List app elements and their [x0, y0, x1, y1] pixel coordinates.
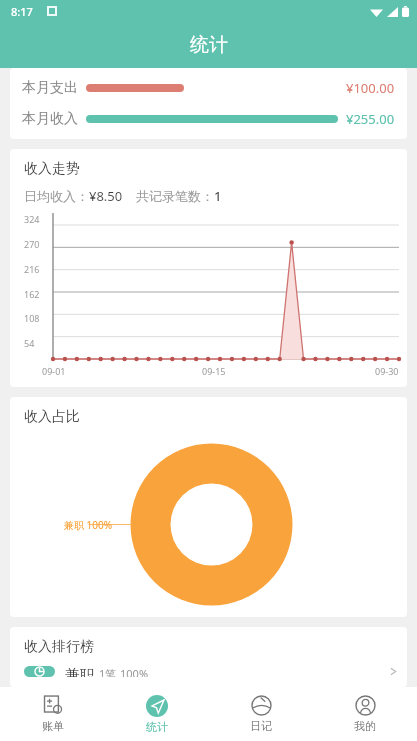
button[interactable]: 账单: [0, 687, 105, 741]
staticText: 09-30: [375, 365, 399, 377]
staticText: 216: [24, 263, 40, 275]
staticText: ¥8.50: [89, 187, 123, 205]
staticText: 日记: [250, 719, 272, 733]
staticText: 162: [24, 288, 40, 300]
button[interactable]: 日记: [209, 687, 313, 741]
staticText: 54: [24, 337, 35, 349]
staticText: 日均收入：: [24, 188, 89, 204]
staticText: 我的: [354, 719, 376, 733]
button[interactable]: 统计: [105, 687, 209, 741]
staticText: 09-01: [42, 365, 66, 377]
staticText: 1: [214, 187, 222, 205]
staticText: 本月支出: [22, 79, 78, 97]
staticText: 兼职 100%: [64, 518, 113, 532]
staticText: 100%: [120, 666, 149, 677]
staticText: 统计: [146, 720, 168, 734]
staticText: 统计: [190, 33, 228, 57]
staticText: 收入占比: [24, 408, 80, 426]
staticText: 共记录笔数：: [136, 188, 214, 204]
button[interactable]: 我的: [313, 687, 417, 741]
staticText: 108: [24, 312, 40, 324]
staticText: 账单: [42, 719, 64, 733]
staticText: 09-15: [202, 365, 226, 377]
staticText: 本月收入: [22, 110, 78, 128]
staticText: 270: [24, 238, 40, 250]
staticText: 兼职: [65, 666, 95, 677]
staticText: 8:17: [11, 4, 33, 19]
staticText: ¥255.00: [346, 110, 395, 128]
staticText: ¥100.00: [346, 79, 395, 97]
staticText: 1笔: [99, 666, 117, 677]
staticText: 收入走势: [24, 160, 80, 178]
staticText: 324: [24, 213, 40, 225]
staticText: 收入排行榜: [24, 638, 94, 656]
button[interactable]: 兼职: [24, 662, 407, 687]
